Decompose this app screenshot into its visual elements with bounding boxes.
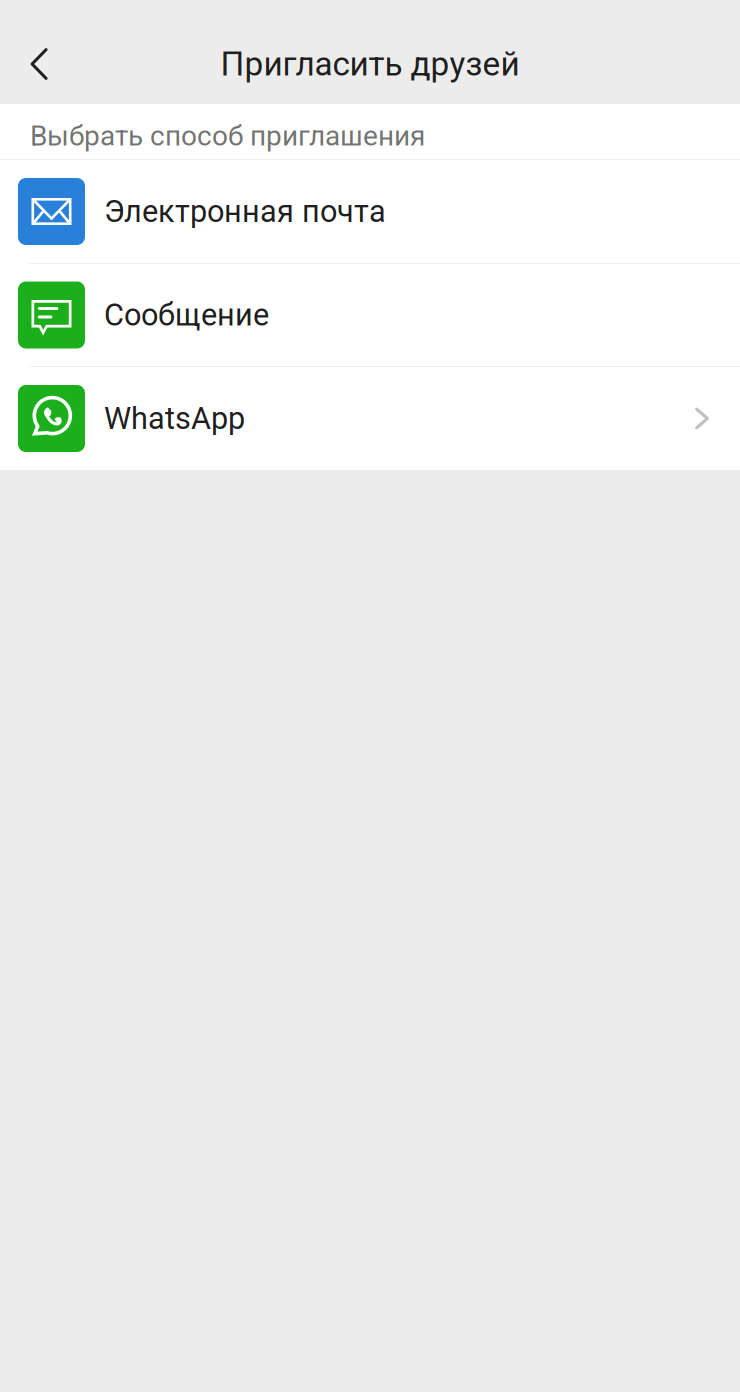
button[interactable]: Электронная почта: [0, 160, 740, 263]
button[interactable]: Back: [7, 32, 71, 96]
button[interactable]: Сообщение: [0, 264, 740, 366]
staticText: Выбрать способ приглашения: [30, 120, 425, 152]
staticText: Электронная почта: [104, 193, 386, 229]
staticText: WhatsApp: [104, 400, 245, 436]
staticText: Сообщение: [104, 297, 269, 333]
button[interactable]: WhatsApp: [0, 367, 740, 470]
staticText: Пригласить друзей: [220, 44, 519, 84]
